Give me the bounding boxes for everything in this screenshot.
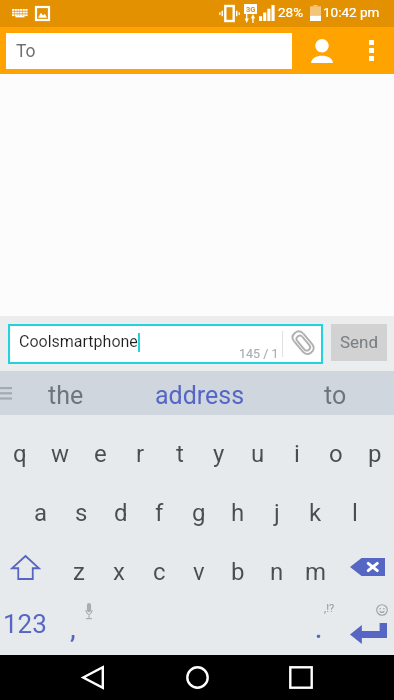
button[interactable]: Back	[60, 655, 126, 700]
staticText: a	[34, 499, 48, 527]
staticText: 28%	[278, 4, 304, 20]
button[interactable]: k	[296, 474, 335, 534]
button[interactable]: n	[257, 533, 296, 593]
button[interactable]: t	[160, 415, 199, 475]
staticText: b	[231, 558, 245, 586]
button[interactable]: r	[120, 415, 160, 475]
button[interactable]: v	[179, 533, 218, 593]
staticText: Coolsmartphone	[19, 332, 138, 351]
button[interactable]: j	[257, 474, 296, 534]
staticText: k	[309, 499, 322, 527]
button[interactable]: the	[6, 371, 126, 415]
staticText: r	[136, 440, 145, 468]
staticText: 145 / 1	[239, 346, 279, 361]
button[interactable]: c	[139, 533, 179, 593]
staticText: Send	[340, 332, 379, 352]
button[interactable]: z	[59, 533, 99, 593]
staticText: t	[176, 440, 184, 468]
button[interactable]: Send	[331, 324, 387, 361]
button[interactable]: Home	[164, 655, 230, 700]
staticText: w	[51, 440, 70, 468]
button[interactable]: i	[277, 415, 316, 475]
staticText: p	[368, 440, 382, 468]
staticText: g	[192, 499, 206, 527]
button[interactable]: Suggestions menu	[0, 371, 24, 415]
button[interactable]: Comma	[56, 595, 112, 655]
button[interactable]: to	[275, 371, 394, 415]
staticText: u	[251, 440, 265, 468]
staticText: 3G	[246, 5, 256, 14]
staticText: z	[73, 558, 85, 586]
staticText: s	[75, 499, 88, 527]
staticText: To	[16, 41, 36, 62]
button[interactable]: q	[0, 415, 40, 475]
button[interactable]: h	[218, 474, 257, 534]
staticText: v	[193, 558, 205, 586]
button[interactable]: More options	[352, 27, 390, 74]
button[interactable]: p	[355, 415, 394, 475]
button[interactable]: y	[199, 415, 238, 475]
staticText: h	[231, 499, 245, 527]
button[interactable]: Coolsmartphone	[8, 324, 323, 364]
button[interactable]: s	[61, 474, 101, 534]
button[interactable]: d	[101, 474, 140, 534]
staticText: c	[153, 558, 166, 586]
button[interactable]: Recents	[268, 655, 334, 700]
button[interactable]: m	[296, 533, 335, 593]
staticText: .	[315, 614, 323, 644]
button[interactable]: x	[99, 533, 139, 593]
button[interactable]: e	[80, 415, 120, 475]
staticText: 123	[3, 609, 47, 639]
staticText: x	[113, 558, 125, 586]
button[interactable]: Enter	[338, 595, 394, 655]
button[interactable]: 123	[0, 595, 56, 655]
staticText: n	[270, 558, 284, 586]
button[interactable]: To	[6, 33, 292, 69]
staticText: to	[324, 381, 347, 410]
staticText: ,	[70, 614, 76, 644]
staticText: e	[94, 440, 107, 468]
staticText: d	[114, 499, 128, 527]
button[interactable]: address	[140, 371, 260, 415]
staticText: m	[305, 558, 327, 586]
button[interactable]: o	[316, 415, 355, 475]
button[interactable]: u	[238, 415, 277, 475]
staticText: o	[329, 440, 343, 468]
button[interactable]: Period	[282, 595, 338, 655]
staticText: i	[294, 440, 300, 468]
button[interactable]: Contacts	[298, 27, 346, 74]
button[interactable]: Backspace	[339, 533, 394, 593]
staticText: the	[48, 381, 84, 410]
button[interactable]: f	[140, 474, 179, 534]
button[interactable]: w	[40, 415, 80, 475]
button[interactable]: a	[21, 474, 61, 534]
staticText: q	[13, 440, 27, 468]
button[interactable]: g	[179, 474, 218, 534]
staticText: f	[155, 499, 164, 527]
button[interactable]: Shift	[0, 533, 55, 593]
staticText: ,!?	[324, 602, 335, 615]
button[interactable]: l	[335, 474, 374, 534]
staticText: 10:42 pm	[323, 4, 380, 20]
staticText: j	[274, 499, 280, 527]
staticText: l	[352, 499, 358, 527]
staticText: address	[155, 381, 245, 410]
staticText: y	[213, 440, 225, 468]
button[interactable]: b	[218, 533, 257, 593]
